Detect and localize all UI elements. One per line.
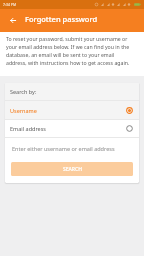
- staticText: Enter either username or email address: [12, 145, 115, 152]
- staticText: Forgotten password: [25, 14, 98, 24]
- staticText: To reset your password, submit your user…: [6, 35, 130, 66]
- button[interactable]: Email address: [5, 120, 139, 137]
- button[interactable]: Back: [4, 12, 21, 29]
- staticText: 7:34 PM: [3, 2, 17, 7]
- staticText: Username: [10, 107, 37, 114]
- button[interactable]: SEARCH: [11, 162, 133, 176]
- staticText: SEARCH: [63, 166, 82, 173]
- staticText: Email address: [10, 125, 46, 132]
- button[interactable]: Username: [5, 101, 139, 119]
- staticText: Search by:: [10, 88, 37, 95]
